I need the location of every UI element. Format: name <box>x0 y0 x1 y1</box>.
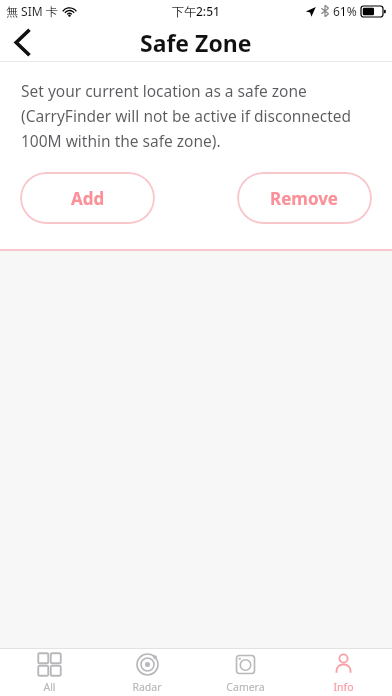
staticText: Safe Zone <box>140 27 252 58</box>
staticText: Set your current location as a safe zone… <box>21 80 351 151</box>
staticText: Info <box>333 680 354 694</box>
button[interactable]: Info <box>294 649 392 696</box>
staticText: All <box>43 680 56 694</box>
staticText: Radar <box>132 680 162 694</box>
button[interactable]: Camera <box>196 649 294 696</box>
staticText: Add <box>71 187 105 210</box>
staticText: Remove <box>270 187 339 210</box>
staticText: 下午2:51 <box>172 3 220 19</box>
staticText: 無 SIM 卡 <box>6 3 58 19</box>
button[interactable]: Radar <box>98 649 196 696</box>
button[interactable]: Remove <box>237 172 372 224</box>
button[interactable]: Add <box>20 172 155 224</box>
staticText: Camera <box>226 680 265 694</box>
staticText: 61% <box>333 3 357 19</box>
button[interactable]: Back <box>0 22 44 62</box>
button[interactable]: All <box>0 649 98 696</box>
